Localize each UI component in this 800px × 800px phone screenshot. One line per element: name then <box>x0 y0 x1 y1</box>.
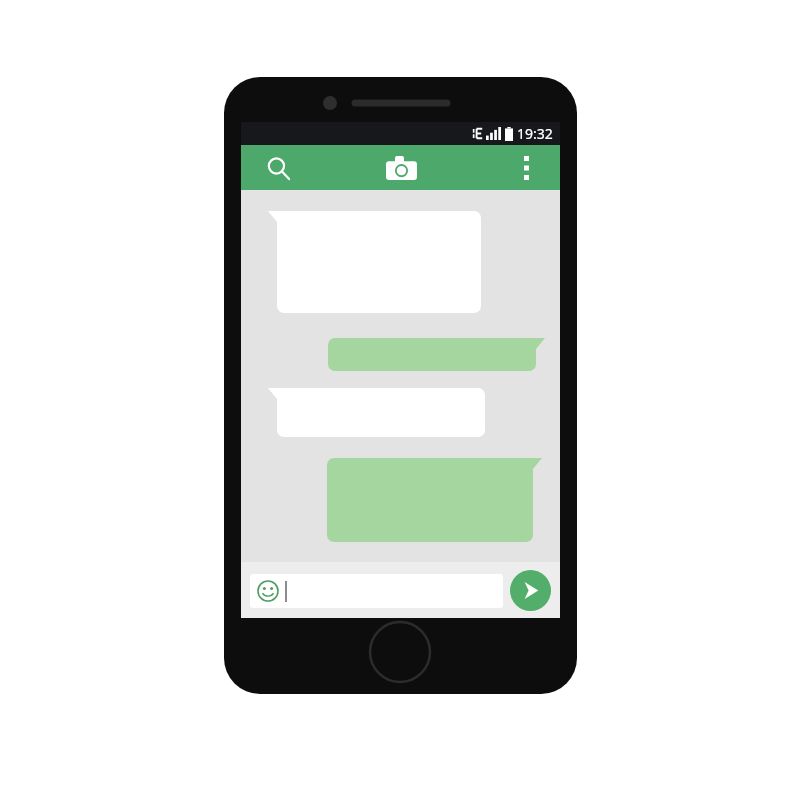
button[interactable] <box>327 458 542 542</box>
button[interactable]: Send <box>510 570 551 611</box>
button[interactable] <box>268 388 485 437</box>
button[interactable] <box>328 338 545 371</box>
button[interactable] <box>268 211 481 313</box>
staticText: 19:32 <box>517 124 553 143</box>
button[interactable]: Insert emoji <box>250 574 503 608</box>
button[interactable]: Camera <box>380 150 422 186</box>
button[interactable]: More options <box>513 149 539 187</box>
button[interactable]: Search <box>260 150 296 186</box>
button[interactable]: Insert emoji <box>256 579 280 603</box>
